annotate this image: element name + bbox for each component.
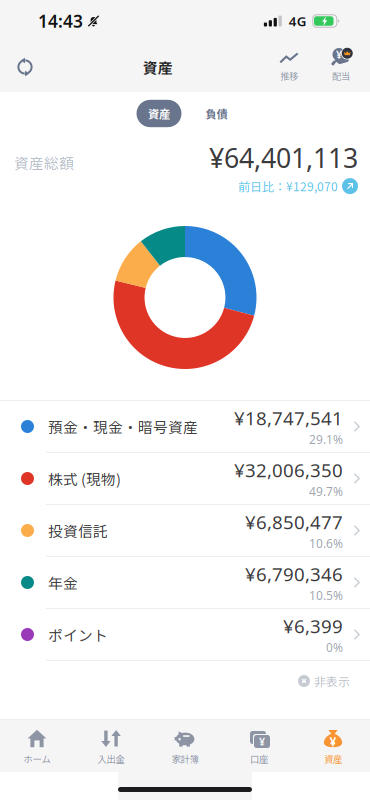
button[interactable]: 家計簿 [148, 720, 222, 772]
staticText: 入出金 [97, 752, 124, 765]
staticText: ホーム [23, 752, 50, 765]
staticText: ¥6,850,477 [245, 510, 343, 534]
staticText: 資産 [148, 105, 170, 122]
staticText: 口座 [250, 752, 268, 765]
button[interactable]: 年金 [0, 557, 370, 609]
staticText: 投資信託 [48, 520, 108, 541]
staticText: 0% [326, 639, 343, 655]
staticText: 10.5% [309, 587, 343, 603]
staticText: 資産 [324, 752, 342, 765]
staticText: ¥ [329, 733, 336, 749]
staticText: 株式 (現物) [48, 468, 121, 489]
button[interactable]: 推移 [266, 42, 312, 92]
staticText: ¥6,399 [283, 614, 343, 638]
staticText: 推移 [280, 69, 298, 82]
button[interactable]: 株式 (現物) [0, 453, 370, 505]
staticText: 29.1% [309, 431, 343, 447]
staticText: 4G [289, 12, 307, 30]
staticText: 年金 [48, 572, 78, 593]
button[interactable]: 非表示 [298, 662, 350, 700]
staticText: 家計簿 [171, 752, 198, 765]
staticText: 14:43 [38, 9, 83, 32]
button[interactable]: ¥ [296, 720, 370, 772]
button[interactable]: ¥ [222, 720, 296, 772]
staticText: 49.7% [309, 483, 343, 499]
staticText: ¥6,790,346 [245, 562, 343, 586]
staticText: 負債 [205, 105, 227, 122]
button[interactable]: 更新 [0, 42, 50, 92]
button[interactable]: 投資信託 [0, 505, 370, 557]
staticText: ¥ [259, 734, 265, 749]
staticText: 資産総額 [14, 152, 74, 173]
button[interactable]: ポイント [0, 609, 370, 661]
staticText: ポイント [48, 624, 108, 645]
button[interactable]: 預金・現金・暗号資産 [0, 401, 370, 453]
staticText: 預金・現金・暗号資産 [48, 416, 198, 437]
staticText: ¥ [336, 47, 342, 62]
staticText: 前日比：¥129,070 [238, 177, 338, 195]
button[interactable]: ¥ [318, 42, 364, 92]
staticText: ¥18,747,541 [234, 406, 343, 430]
button[interactable]: ホーム [0, 720, 74, 772]
button[interactable]: 資産 [136, 100, 181, 127]
button[interactable]: 負債 [199, 100, 233, 127]
staticText: ¥64,401,113 [209, 140, 358, 175]
staticText: 資産 [143, 56, 173, 78]
staticText: 10.6% [309, 535, 343, 551]
button[interactable]: 入出金 [74, 720, 148, 772]
staticText: 非表示 [314, 672, 350, 690]
staticText: ¥32,006,350 [234, 458, 343, 482]
staticText: 配当 [332, 69, 350, 82]
